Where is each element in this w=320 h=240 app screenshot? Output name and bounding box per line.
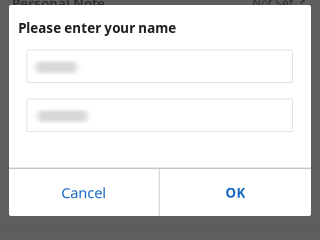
button[interactable]: Cancel <box>9 169 159 216</box>
button[interactable]: OK <box>160 169 311 216</box>
staticText: Cancel <box>61 183 106 202</box>
staticText: Not Set <box>252 0 293 11</box>
staticText: Personal Note <box>12 0 105 12</box>
staticText: Please enter your name <box>18 19 176 37</box>
staticText: OK <box>225 184 245 201</box>
